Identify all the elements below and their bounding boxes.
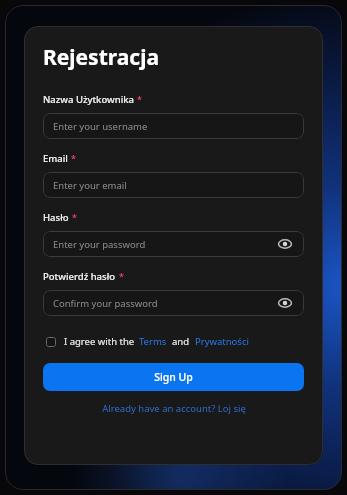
staticText: I agree with the [64, 335, 135, 348]
staticText: Nazwa Użytkownika [43, 93, 134, 106]
staticText: Hasło [43, 211, 69, 224]
staticText: * [72, 211, 77, 223]
button[interactable]: Sign Up [43, 363, 304, 391]
staticText: Confirm your password [53, 297, 158, 310]
staticText: Potwierdź hasło [43, 270, 116, 283]
button[interactable]: I agree with the terms checkbox [43, 334, 58, 349]
button[interactable]: Show password [276, 235, 294, 253]
button[interactable]: Enter your password [43, 231, 304, 257]
staticText: Rejestracja [43, 43, 159, 72]
staticText: Already have an account? Loj się [102, 402, 246, 415]
button[interactable]: Enter your username [43, 113, 304, 139]
staticText: * [137, 93, 142, 105]
button[interactable]: Confirm your password [43, 290, 304, 316]
button[interactable]: Terms [139, 335, 167, 348]
staticText: Sign Up [154, 370, 193, 384]
staticText: Email [43, 152, 68, 165]
button[interactable]: Enter your email [43, 172, 304, 198]
button[interactable]: Prywatności [195, 335, 249, 348]
staticText: Prywatności [195, 335, 249, 348]
staticText: and [172, 335, 190, 348]
staticText: Enter your password [53, 238, 146, 251]
staticText: * [71, 152, 76, 164]
staticText: Terms [139, 335, 167, 348]
staticText: Enter your username [53, 120, 148, 133]
staticText: Enter your email [53, 179, 127, 192]
button[interactable]: Show password [276, 294, 294, 312]
staticText: * [119, 270, 124, 282]
button[interactable]: Already have an account? Loj się [43, 402, 304, 415]
